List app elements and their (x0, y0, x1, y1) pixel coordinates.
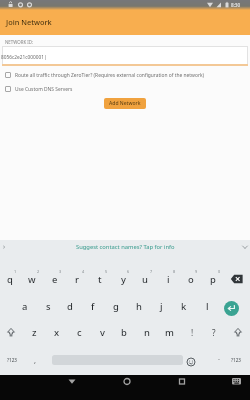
staticText: q (7, 273, 13, 286)
button[interactable] (3, 325, 19, 339)
staticText: v (100, 326, 105, 339)
staticText: Suggest contact names? Tap for info (76, 243, 175, 251)
button[interactable] (224, 301, 239, 316)
button[interactable] (170, 377, 194, 397)
staticText: t (98, 273, 102, 286)
staticText: j (160, 300, 163, 313)
staticText: 8 (173, 269, 176, 274)
button[interactable]: Use Custom DNS Servers (5, 84, 245, 94)
staticText: b (121, 326, 127, 339)
staticText: n (144, 326, 150, 339)
staticText: Join Network (6, 17, 52, 27)
staticText: 5 (105, 269, 108, 274)
staticText: o (188, 273, 194, 286)
staticText: NETWORK ID: (5, 39, 34, 45)
staticText: 4 (82, 269, 85, 274)
button[interactable] (226, 377, 248, 397)
staticText: 2 (37, 269, 40, 274)
staticText: x (54, 326, 60, 339)
staticText: ?123 (231, 357, 241, 363)
staticText: i (167, 273, 170, 286)
staticText: g (113, 300, 119, 313)
staticText: ? (212, 327, 216, 338)
button[interactable] (60, 377, 84, 397)
button[interactable] (115, 377, 139, 397)
button[interactable] (184, 355, 198, 369)
staticText: w (28, 273, 36, 286)
staticText: u (142, 273, 148, 286)
staticText: 8056c2e21c000001| (1, 54, 47, 61)
staticText: 6 (127, 269, 130, 274)
staticText: f (91, 300, 95, 313)
button[interactable]: Add Network (104, 98, 146, 109)
staticText: l (206, 300, 209, 313)
staticText: z (32, 326, 37, 339)
staticText: Route all traffic through ZeroTier? (Req… (15, 72, 204, 79)
staticText: 9 (195, 269, 198, 274)
staticText: m (165, 326, 174, 339)
staticText: e (52, 273, 58, 286)
button[interactable] (227, 272, 247, 286)
staticText: 0 (218, 269, 221, 274)
button[interactable] (230, 325, 246, 339)
staticText: p (210, 273, 216, 286)
button[interactable]: Route all traffic through ZeroTier? (Req… (5, 70, 245, 80)
staticText: 1 (14, 269, 17, 274)
staticText: s (46, 300, 51, 313)
staticText: , (34, 355, 37, 365)
staticText: h (136, 300, 142, 313)
staticText: 8:30 (231, 2, 241, 8)
staticText: - (218, 355, 220, 363)
button[interactable] (2, 46, 248, 65)
staticText: y (121, 273, 126, 286)
staticText: d (67, 300, 73, 313)
staticText: c (77, 326, 82, 339)
staticText: ?123 (7, 357, 17, 363)
staticText: r (75, 273, 79, 286)
staticText: 7 (150, 269, 153, 274)
staticText: a (22, 300, 28, 313)
staticText: Use Custom DNS Servers (15, 86, 73, 93)
staticText: ! (191, 327, 194, 338)
staticText: Add Network (109, 100, 141, 107)
staticText: k (181, 300, 187, 313)
staticText: › (3, 242, 6, 252)
staticText: 3 (59, 269, 62, 274)
